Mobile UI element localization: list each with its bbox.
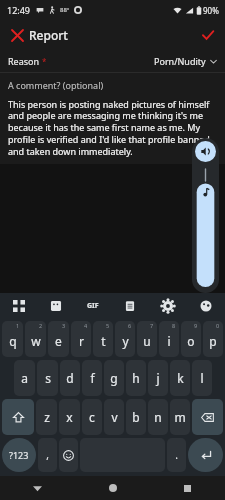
staticText: s — [45, 370, 51, 386]
staticText: z — [44, 409, 50, 425]
button[interactable]: j — [148, 360, 168, 396]
button[interactable]: Apps — [0, 293, 37, 319]
staticText: k — [177, 370, 184, 386]
button[interactable]: c — [82, 399, 102, 435]
staticText: t — [101, 333, 106, 349]
staticText: . — [175, 448, 178, 462]
button[interactable]: GIF — [74, 293, 111, 319]
staticText: i — [167, 333, 171, 349]
staticText: g — [110, 370, 118, 386]
button[interactable]: l — [192, 360, 212, 396]
staticText: n — [154, 409, 162, 425]
button[interactable]: 7 — [137, 321, 157, 357]
staticText: v — [111, 409, 118, 425]
staticText: 8 — [172, 322, 176, 329]
button[interactable]: 0 — [203, 321, 223, 357]
staticText: 12:49 — [7, 4, 31, 16]
staticText: a — [21, 370, 28, 386]
button[interactable]: Enter — [188, 438, 223, 472]
button[interactable]: 6 — [115, 321, 135, 357]
staticText: 88° — [60, 6, 70, 14]
staticText: ?123 — [9, 449, 29, 461]
button[interactable]: 1 — [2, 321, 23, 357]
button[interactable]: Clipboard — [111, 293, 149, 319]
staticText: GIF — [87, 301, 99, 311]
staticText: h — [132, 370, 140, 386]
staticText: p — [209, 333, 217, 349]
button[interactable]: 5 — [93, 321, 113, 357]
staticText: 5 — [106, 322, 110, 329]
button[interactable]: 8 — [159, 321, 179, 357]
button[interactable]: Submit report — [195, 22, 221, 48]
staticText: y — [122, 333, 129, 349]
button[interactable]: Back — [0, 476, 75, 500]
staticText: d — [66, 370, 74, 386]
button[interactable]: Reason — [0, 50, 225, 72]
staticText: o — [187, 333, 195, 349]
staticText: Porn/Nudity — [154, 55, 206, 67]
button[interactable]: n — [148, 399, 168, 435]
button[interactable]: f — [82, 360, 102, 396]
staticText: * — [40, 56, 47, 67]
button[interactable]: m — [170, 399, 190, 435]
button[interactable]: Stickers — [37, 293, 74, 319]
button[interactable]: Media volume — [195, 167, 216, 289]
staticText: 4 — [84, 322, 88, 329]
staticText: 2 — [39, 322, 43, 329]
staticText: , — [46, 448, 49, 462]
staticText: q — [9, 333, 17, 349]
button[interactable]: 4 — [71, 321, 91, 357]
button[interactable]: Themes — [187, 293, 225, 319]
button[interactable]: , — [38, 438, 57, 472]
staticText: r — [79, 333, 84, 349]
button[interactable]: Settings — [149, 293, 187, 319]
staticText: 0 — [216, 322, 220, 329]
button[interactable]: Emoji — [59, 438, 78, 472]
button[interactable]: . — [167, 438, 186, 472]
staticText: l — [200, 370, 204, 386]
button[interactable]: 2 — [25, 321, 46, 357]
button[interactable]: k — [170, 360, 190, 396]
staticText: f — [90, 370, 95, 386]
button[interactable]: g — [104, 360, 124, 396]
button[interactable]: b — [126, 399, 146, 435]
staticText: j — [156, 370, 160, 386]
staticText: b — [132, 409, 140, 425]
button[interactable]: Recent apps — [150, 476, 225, 500]
button[interactable]: z — [36, 399, 57, 435]
staticText: 1 — [16, 322, 20, 329]
button[interactable]: s — [37, 360, 58, 396]
staticText: m — [174, 409, 186, 425]
button[interactable]: d — [60, 360, 80, 396]
button[interactable]: This person is posting naked pictures of… — [8, 98, 217, 158]
staticText: 3 — [62, 322, 66, 329]
button[interactable]: 9 — [181, 321, 201, 357]
button[interactable]: a — [14, 360, 35, 396]
staticText: 90% — [203, 5, 219, 16]
staticText: 7 — [150, 322, 154, 329]
button[interactable]: Shift — [2, 399, 34, 435]
staticText: Reason — [8, 55, 40, 67]
button[interactable]: v — [104, 399, 124, 435]
button[interactable]: Home — [75, 476, 150, 500]
staticText: e — [55, 333, 62, 349]
button[interactable]: ?123 — [2, 438, 36, 472]
staticText: Report — [29, 27, 68, 43]
button[interactable]: h — [126, 360, 146, 396]
button[interactable]: Backspace — [192, 399, 223, 435]
button[interactable]: Close — [4, 22, 30, 48]
staticText: 6 — [128, 322, 132, 329]
staticText: c — [89, 409, 95, 425]
button[interactable]: 3 — [48, 321, 69, 357]
staticText: A comment? (optional) — [8, 79, 104, 91]
staticText: u — [143, 333, 151, 349]
staticText: x — [66, 409, 73, 425]
staticText: 9 — [194, 322, 198, 329]
staticText: w — [31, 333, 41, 349]
button[interactable]: Ringer mode — [195, 141, 216, 162]
button[interactable]: x — [59, 399, 80, 435]
